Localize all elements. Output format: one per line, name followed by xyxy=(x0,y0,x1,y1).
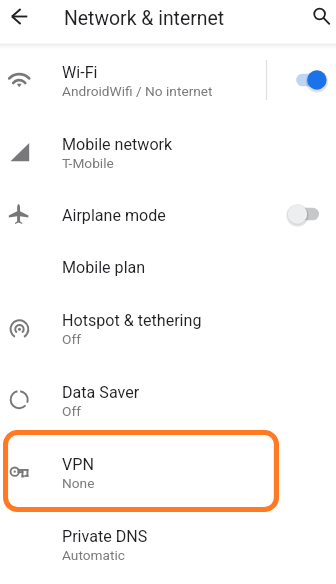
staticText: Automatic xyxy=(62,547,125,563)
button[interactable]: Mobile network xyxy=(0,117,336,189)
button[interactable]: Airplane mode xyxy=(0,189,336,241)
button[interactable]: Search xyxy=(308,4,330,26)
staticText: VPN xyxy=(62,455,94,474)
staticText: Off xyxy=(62,403,81,419)
staticText: Airplane mode xyxy=(62,206,166,225)
staticText: Mobile plan xyxy=(62,258,146,277)
staticText: Off xyxy=(62,331,81,347)
button[interactable]: Back xyxy=(6,3,34,31)
staticText: Network & internet xyxy=(64,7,225,30)
staticText: Data Saver xyxy=(62,383,140,402)
button[interactable]: Mobile plan xyxy=(0,241,336,293)
button[interactable]: Private DNS xyxy=(0,509,336,581)
button[interactable]: Wi-Fi toggle xyxy=(286,45,336,117)
button[interactable]: VPN xyxy=(0,437,336,509)
staticText: Hotspot & tethering xyxy=(62,311,202,330)
staticText: Private DNS xyxy=(62,527,148,546)
staticText: AndroidWifi / No internet xyxy=(62,83,213,99)
staticText: None xyxy=(62,475,95,491)
button[interactable]: Airplane mode toggle xyxy=(286,189,336,241)
button[interactable]: Hotspot & tethering xyxy=(0,293,336,365)
button[interactable]: Data Saver xyxy=(0,365,336,437)
staticText: Wi-Fi xyxy=(62,63,98,82)
staticText: T-Mobile xyxy=(62,155,114,171)
button[interactable]: Wi-Fi xyxy=(0,45,336,117)
staticText: Mobile network xyxy=(62,135,173,154)
